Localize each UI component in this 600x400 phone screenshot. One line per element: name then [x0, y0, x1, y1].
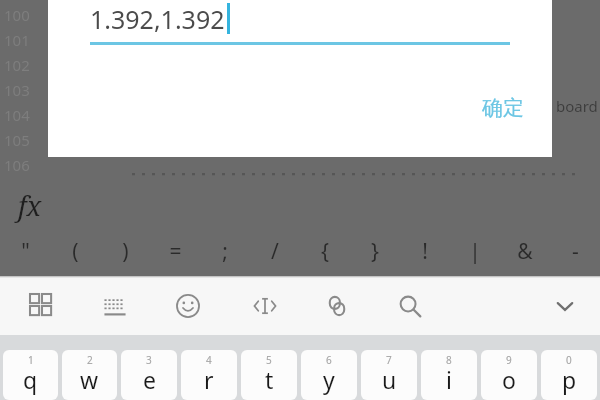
staticText: 102	[4, 55, 30, 75]
button[interactable]: 0	[541, 350, 597, 400]
button[interactable]: (	[50, 226, 100, 276]
button[interactable]: 确定	[468, 88, 538, 128]
staticText: 6	[326, 353, 332, 367]
staticText: |	[469, 237, 481, 266]
staticText: e	[143, 364, 156, 395]
staticText: 8	[446, 353, 452, 367]
staticText: q	[23, 364, 38, 395]
staticText: fx	[18, 187, 42, 224]
staticText: board	[556, 96, 598, 116]
button[interactable]: |	[450, 226, 500, 276]
staticText: "	[21, 237, 30, 266]
staticText: u	[382, 364, 397, 395]
button[interactable]: 1	[3, 350, 58, 400]
button[interactable]: )	[100, 226, 150, 276]
button[interactable]: {	[300, 226, 350, 276]
button[interactable]: =	[150, 226, 200, 276]
staticText: {	[321, 237, 329, 266]
button[interactable]: Emoji	[168, 286, 208, 326]
staticText: !	[422, 237, 428, 266]
staticText: 4	[206, 353, 212, 367]
staticText: 1.392,1.392	[90, 2, 225, 36]
button[interactable]: 5	[241, 350, 297, 400]
button[interactable]: 3	[121, 350, 177, 400]
staticText: 9	[506, 353, 512, 367]
staticText: 7	[386, 353, 392, 367]
button[interactable]: "	[0, 226, 50, 276]
button[interactable]: !	[400, 226, 450, 276]
staticText: (	[72, 237, 79, 266]
staticText: 106	[4, 155, 30, 175]
staticText: -	[572, 237, 579, 266]
staticText: 1	[28, 353, 34, 367]
staticText: r	[204, 364, 214, 395]
staticText: o	[502, 364, 516, 395]
staticText: )	[122, 237, 129, 266]
staticText: 105	[4, 130, 30, 150]
staticText: }	[371, 237, 379, 266]
button[interactable]: /	[250, 226, 300, 276]
staticText: p	[562, 364, 577, 395]
button[interactable]: 4	[181, 350, 237, 400]
staticText: 3	[146, 353, 152, 367]
staticText: =	[169, 237, 182, 266]
button[interactable]: -	[550, 226, 600, 276]
staticText: i	[446, 364, 452, 395]
button[interactable]: 7	[361, 350, 417, 400]
button[interactable]: Clipboard	[317, 286, 357, 326]
staticText: y	[323, 364, 335, 395]
staticText: ;	[222, 237, 228, 266]
staticText: 104	[4, 105, 30, 125]
button[interactable]: 8	[421, 350, 477, 400]
button[interactable]: Symbols grid	[22, 286, 62, 326]
staticText: w	[80, 364, 99, 395]
button[interactable]: }	[350, 226, 400, 276]
staticText: /	[271, 237, 279, 266]
staticText: t	[265, 364, 274, 395]
staticText: 0	[566, 353, 572, 367]
button[interactable]: 2	[62, 350, 117, 400]
staticText: 5	[266, 353, 272, 367]
button[interactable]: Keyboard layout	[95, 286, 135, 326]
button[interactable]: &	[500, 226, 550, 276]
button[interactable]: ;	[200, 226, 250, 276]
staticText: &	[517, 237, 533, 266]
staticText: 确定	[482, 95, 524, 121]
staticText: 103	[4, 80, 30, 100]
button[interactable]: 6	[301, 350, 357, 400]
button[interactable]: Search	[390, 286, 430, 326]
button[interactable]: Move cursor	[245, 286, 285, 326]
staticText: 2	[87, 353, 93, 367]
button[interactable]: 9	[481, 350, 537, 400]
staticText: 100	[4, 5, 30, 25]
staticText: 101	[4, 30, 30, 50]
button[interactable]: Collapse keyboard	[545, 286, 585, 326]
button[interactable]: fx	[0, 184, 600, 226]
